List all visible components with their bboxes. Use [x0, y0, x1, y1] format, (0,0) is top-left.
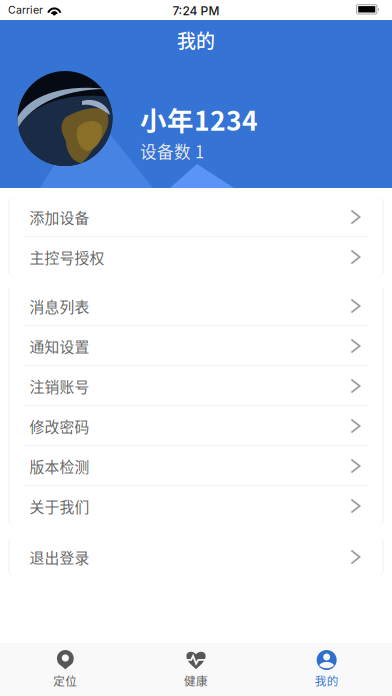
button[interactable]: 注销账号: [9, 366, 382, 406]
staticText: Carrier: [8, 3, 43, 16]
staticText: 关于我们: [29, 495, 89, 517]
button[interactable]: 我的: [0, 29, 392, 51]
staticText: 消息列表: [29, 295, 89, 317]
button[interactable]: 定位: [0, 643, 131, 696]
staticText: 退出登录: [29, 546, 89, 568]
button[interactable]: 添加设备: [9, 197, 382, 237]
staticText: 设备数 1: [140, 139, 204, 163]
button[interactable]: 我的: [261, 643, 392, 696]
staticText: 通知设置: [29, 335, 89, 357]
staticText: 修改密码: [29, 415, 89, 437]
staticText: 添加设备: [29, 206, 89, 228]
staticText: 版本检测: [29, 455, 89, 477]
button[interactable]: 健康: [131, 643, 261, 696]
staticText: 我的: [177, 26, 215, 54]
button[interactable]: 通知设置: [9, 326, 382, 366]
staticText: 注销账号: [29, 375, 89, 397]
button[interactable]: 版本检测: [9, 446, 382, 486]
staticText: 定位: [53, 672, 77, 689]
staticText: 小年1234: [140, 100, 258, 138]
staticText: 健康: [184, 672, 208, 689]
staticText: 我的: [315, 672, 339, 689]
button[interactable]: 退出登录: [9, 537, 382, 577]
button[interactable]: 消息列表: [9, 286, 382, 326]
staticText: 7:24 PM: [172, 3, 219, 18]
button[interactable]: 主控号授权: [9, 237, 382, 277]
staticText: 主控号授权: [29, 246, 104, 268]
button[interactable]: 关于我们: [9, 486, 382, 526]
button[interactable]: 修改密码: [9, 406, 382, 446]
